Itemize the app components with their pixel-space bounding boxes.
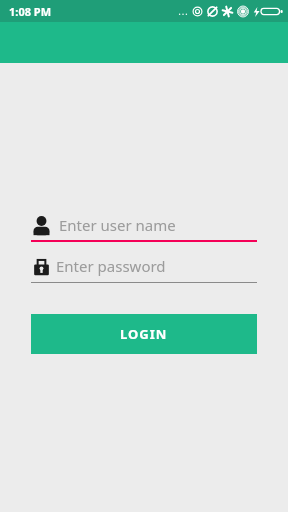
button[interactable]: LOGIN <box>31 314 257 354</box>
button[interactable]: Password <box>31 251 257 283</box>
staticText: Enter user name <box>59 215 176 235</box>
staticText: LOGIN <box>120 325 168 343</box>
staticText: 1:08 PM <box>9 4 52 19</box>
other: Password <box>31 256 52 277</box>
button[interactable]: User <box>31 210 257 242</box>
other: User <box>31 215 52 236</box>
staticText: Enter password <box>56 256 166 276</box>
